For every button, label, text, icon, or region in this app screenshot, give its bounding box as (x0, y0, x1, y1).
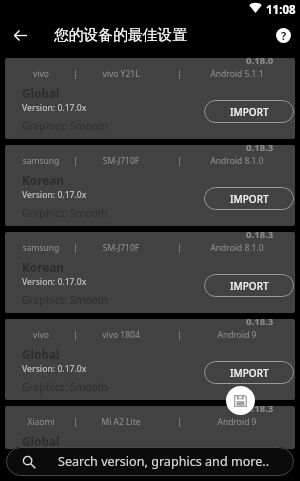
staticText: vivo (5, 68, 77, 80)
button[interactable]: 0.18.0 (5, 58, 295, 139)
staticText: Korean (22, 259, 65, 275)
staticText: | (73, 155, 78, 167)
staticText: Mi A2 Lite (81, 416, 161, 428)
button[interactable]: IMPORT (204, 448, 294, 449)
staticText: vivo (5, 329, 77, 341)
staticText: | (73, 416, 78, 428)
staticText: samsung (5, 155, 77, 167)
button[interactable]: Search version, graphics and more.. (6, 447, 294, 476)
staticText: 您的设备的最佳设置 (54, 26, 188, 45)
staticText: Version: 0.17.0x (22, 363, 87, 375)
staticText: Search version, graphics and more.. (58, 453, 270, 470)
button[interactable]: IMPORT (204, 187, 294, 210)
staticText: Android 9 (187, 329, 287, 341)
staticText: IMPORT (230, 105, 269, 119)
button[interactable]: IMPORT (204, 100, 294, 123)
staticText: IMPORT (230, 192, 269, 206)
staticText: SM-J710F (81, 155, 161, 167)
staticText: | (177, 416, 182, 428)
button[interactable]: IMPORT (204, 361, 294, 384)
button[interactable]: Save (226, 386, 255, 415)
staticText: 0.18.3 (246, 145, 274, 154)
button[interactable]: Back (8, 23, 32, 47)
staticText: Version: 0.17.0x (22, 102, 87, 114)
staticText: SM-J710F (81, 242, 161, 254)
button[interactable]: 0.18.3 (5, 319, 295, 400)
staticText: ? (281, 28, 287, 43)
staticText: Graphics: Smooth (22, 380, 108, 394)
staticText: Android 8.1.0 (187, 242, 287, 254)
staticText: Global (22, 85, 60, 101)
staticText: 0.18.3 (246, 232, 274, 241)
staticText: IMPORT (230, 279, 269, 293)
staticText: Version: 0.17.0x (22, 276, 87, 288)
staticText: Android 8.1.0 (187, 155, 287, 167)
staticText: Graphics: Smooth (22, 206, 108, 220)
staticText: Graphics: Smooth (22, 293, 108, 307)
staticText: | (177, 68, 182, 80)
staticText: 0.18.3 (246, 406, 274, 415)
staticText: | (177, 242, 182, 254)
staticText: 0.18.3 (246, 319, 274, 328)
staticText: Global (22, 433, 60, 449)
button[interactable]: 0.18.3 (5, 145, 295, 226)
staticText: | (73, 242, 78, 254)
staticText: Android 9 (187, 416, 287, 428)
staticText: vivo Y21L (81, 68, 161, 80)
button[interactable]: Help (272, 24, 294, 46)
staticText: vivo 1804 (81, 329, 161, 341)
staticText: 11:08 (266, 2, 296, 18)
staticText: samsung (5, 242, 77, 254)
staticText: Graphics: Smooth (22, 119, 108, 133)
staticText: IMPORT (230, 366, 269, 380)
staticText: 0.18.0 (246, 58, 274, 67)
staticText: Xiaomi (5, 416, 77, 428)
staticText: | (73, 329, 78, 341)
staticText: Version: 0.17.0x (22, 189, 87, 201)
button[interactable]: 0.18.3 (5, 232, 295, 313)
staticText: Global (22, 346, 60, 362)
button[interactable]: IMPORT (204, 274, 294, 297)
staticText: Android 5.1.1 (187, 68, 287, 80)
staticText: | (177, 329, 182, 341)
staticText: | (73, 68, 78, 80)
staticText: Korean (22, 172, 65, 188)
staticText: | (177, 155, 182, 167)
button[interactable]: 0.18.3 (5, 406, 295, 449)
